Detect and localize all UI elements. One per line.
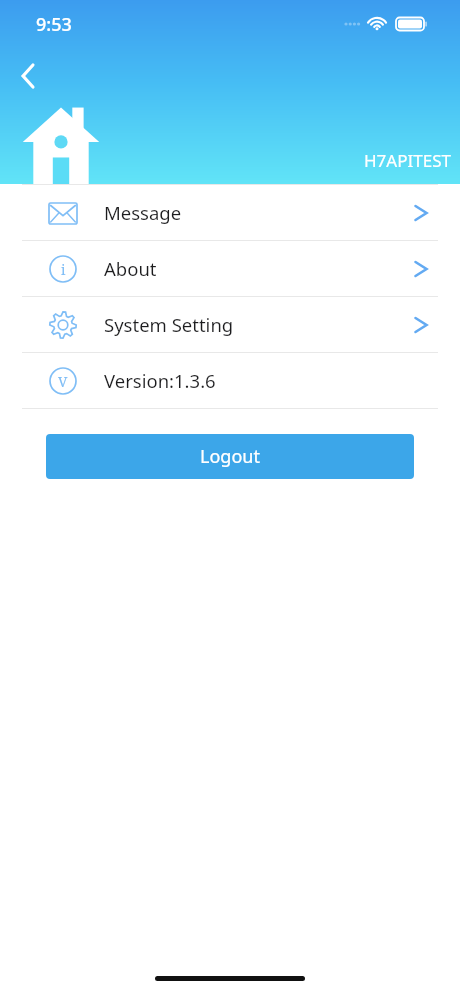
staticText: H7APITEST: [364, 149, 451, 172]
staticText: V: [58, 372, 68, 391]
staticText: i: [61, 260, 66, 279]
staticText: 9:53: [36, 12, 72, 37]
staticText: Message: [104, 200, 182, 225]
staticText: Logout: [200, 444, 260, 469]
button[interactable]: Back: [4, 52, 52, 100]
button[interactable]: System Setting: [0, 297, 460, 352]
staticText: System Setting: [104, 312, 234, 337]
button[interactable]: V: [0, 353, 460, 408]
button[interactable]: Logout: [46, 434, 414, 479]
staticText: About: [104, 256, 157, 281]
staticText: Version:1.3.6: [104, 368, 216, 393]
button[interactable]: i: [0, 241, 460, 296]
button[interactable]: Message: [0, 185, 460, 240]
